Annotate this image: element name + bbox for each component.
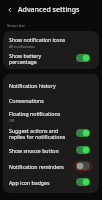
button[interactable]: App icon badges (3, 174, 99, 190)
staticText: Notification history (9, 82, 56, 89)
staticText: Advanced settings (18, 5, 80, 15)
button[interactable]: Notification reminders (73, 160, 93, 172)
staticText: Conversations (9, 97, 44, 104)
button[interactable]: Show battery percentage (73, 52, 93, 64)
staticText: All notifications (9, 44, 35, 49)
button[interactable]: Suggest actions and replies for notifica… (3, 124, 99, 142)
staticText: Off (9, 118, 15, 123)
button[interactable]: Show notification icons (3, 34, 99, 50)
button[interactable]: Notification reminders (3, 158, 99, 174)
button[interactable]: Suggest actions and replies for notifica… (73, 127, 93, 139)
button[interactable]: App icon badges (73, 176, 93, 188)
button[interactable]: Back (5, 5, 15, 15)
staticText: App icon badges (9, 179, 50, 186)
button[interactable]: Show snooze button (73, 144, 93, 156)
staticText: Notification reminders (9, 163, 64, 170)
staticText: Floating notifications (9, 110, 61, 117)
staticText: Suggest actions and replies for notifica… (9, 127, 70, 140)
button[interactable]: Notification history (3, 77, 99, 93)
staticText: Show snooze button (9, 147, 59, 154)
staticText: Show notification icons (9, 36, 66, 43)
button[interactable]: Show snooze button (3, 142, 99, 158)
staticText: Status bar (7, 23, 26, 28)
button[interactable]: Conversations (3, 93, 99, 108)
staticText: Show battery percentage (9, 52, 70, 65)
button[interactable]: Show battery percentage (3, 50, 99, 66)
button[interactable]: Floating notifications (3, 108, 99, 124)
